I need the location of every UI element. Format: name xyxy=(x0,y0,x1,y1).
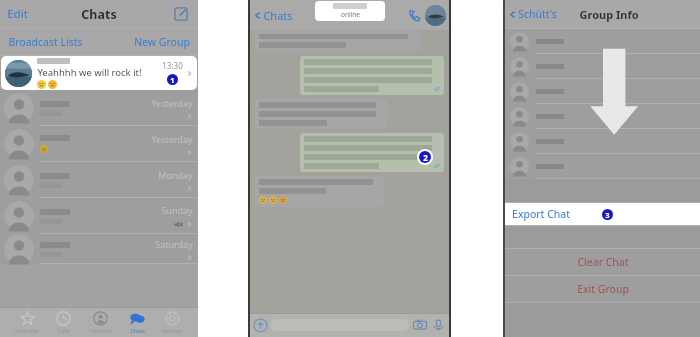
staticText: Calls xyxy=(57,327,70,334)
button[interactable]: Contacts xyxy=(86,309,115,336)
staticText: Schütt's xyxy=(518,7,557,21)
button[interactable] xyxy=(505,129,700,154)
button[interactable]: Edit xyxy=(5,2,30,26)
staticText: Exit Group xyxy=(577,282,629,296)
staticText: Group Info xyxy=(579,7,639,22)
button[interactable]: Exit Group xyxy=(505,276,700,302)
staticText: Sunday xyxy=(161,204,193,216)
button[interactable]: New Group xyxy=(132,32,192,52)
button[interactable]: Compose xyxy=(173,6,189,22)
button[interactable]: Calls xyxy=(53,309,74,336)
staticText: Settings xyxy=(162,327,183,334)
button[interactable] xyxy=(505,79,700,104)
button[interactable]: Favorites xyxy=(12,309,42,336)
button[interactable]: Call xyxy=(408,9,421,22)
button[interactable]: Chats xyxy=(253,8,293,23)
button[interactable]: Settings xyxy=(159,309,186,336)
staticText: Yesterday xyxy=(151,97,193,109)
button[interactable] xyxy=(505,104,700,129)
button[interactable]: Monday xyxy=(0,162,198,198)
staticText: Favorites xyxy=(15,327,39,334)
button[interactable] xyxy=(505,54,700,79)
button[interactable]: Schütt's xyxy=(508,7,557,21)
staticText: 2 xyxy=(423,152,428,163)
staticText: 13:30 xyxy=(162,60,183,71)
staticText: Export Chat xyxy=(512,207,570,221)
button[interactable]: Voice message xyxy=(432,319,445,332)
staticText: 1 xyxy=(170,75,175,85)
staticText: Monday xyxy=(158,169,193,181)
button[interactable]: Sunday xyxy=(0,198,198,234)
button[interactable]: Clear Chat xyxy=(505,249,700,275)
button[interactable]: Broadcast Lists xyxy=(6,32,85,52)
staticText: Edit xyxy=(7,6,28,22)
button[interactable]: Export Chat xyxy=(505,203,700,225)
staticText: Chats xyxy=(130,327,145,334)
button[interactable] xyxy=(505,154,700,179)
staticText: online xyxy=(341,10,360,19)
button[interactable]: Yesterday xyxy=(0,126,198,162)
staticText: 3 xyxy=(605,210,610,220)
staticText: Yesterday xyxy=(151,133,193,145)
staticText: Saturday xyxy=(155,238,193,250)
button[interactable]: Camera xyxy=(413,318,427,332)
button[interactable]: Yesterday xyxy=(0,90,198,126)
button[interactable]: Contact info xyxy=(425,5,446,26)
staticText: Chats xyxy=(263,8,293,23)
staticText: Chats xyxy=(81,6,117,23)
staticText: Clear Chat xyxy=(577,255,629,269)
staticText: Broadcast Lists xyxy=(8,35,83,49)
button[interactable]: Yeahhhh we will rock it! xyxy=(1,56,197,90)
button[interactable] xyxy=(505,29,700,54)
button[interactable]: Attach xyxy=(254,319,267,332)
button[interactable]: Chats xyxy=(127,309,148,336)
staticText: Yeahhhh we will rock it! xyxy=(37,66,142,79)
staticText: New Group xyxy=(134,35,190,49)
staticText: Contacts xyxy=(89,327,112,334)
button[interactable]: Saturday xyxy=(0,234,198,264)
